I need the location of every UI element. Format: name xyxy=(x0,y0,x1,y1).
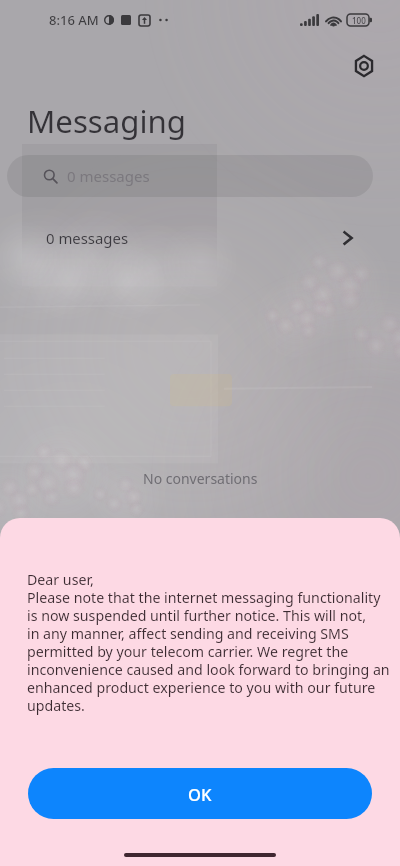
staticText: 0 messages xyxy=(46,228,129,248)
button[interactable]: Settings xyxy=(347,49,381,83)
staticText: No conversations xyxy=(143,469,258,488)
button[interactable]: 0 messages xyxy=(0,210,400,266)
staticText: OK xyxy=(188,783,212,805)
staticText: Messaging xyxy=(27,100,186,142)
staticText: Dear user, Please note that the internet… xyxy=(27,570,390,715)
staticText: 8:16 AM xyxy=(49,11,99,29)
button[interactable]: 0 messages xyxy=(7,155,373,197)
button[interactable]: OK xyxy=(28,768,372,819)
staticText: 0 messages xyxy=(67,166,150,186)
staticText: 100 xyxy=(352,15,366,26)
